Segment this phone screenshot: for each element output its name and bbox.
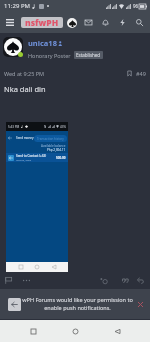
staticText: 11:29 PM	[4, 2, 30, 10]
staticText: Established	[76, 52, 101, 58]
button[interactable]: Attached screenshot	[6, 122, 68, 272]
button[interactable]: nsfwPH home	[21, 17, 63, 28]
staticText: Honorary Poster	[28, 52, 71, 59]
staticText: Transaction history	[37, 137, 64, 141]
staticText: Aug 20, 2023	[16, 158, 32, 161]
button[interactable]: Reply	[134, 274, 146, 286]
button[interactable]: Wed at 9:25 PM	[4, 70, 45, 77]
staticText: N	[44, 125, 47, 129]
button[interactable]: unica18	[28, 38, 57, 48]
staticText: Available balance	[41, 144, 66, 148]
button[interactable]: Dismiss	[135, 299, 145, 309]
button[interactable]: unica18 avatar	[3, 37, 23, 57]
button[interactable]: Add reaction	[97, 274, 110, 287]
staticText: Php 2,304.11	[47, 148, 66, 152]
button[interactable]: Back	[8, 298, 21, 311]
button[interactable]: Home	[66, 322, 84, 340]
staticText: Send to Contact (+63)	[16, 154, 47, 158]
button[interactable]: Inbox	[80, 12, 97, 33]
button[interactable]: Open navigation menu	[0, 12, 19, 33]
button[interactable]: Recents	[24, 322, 42, 340]
staticText: 500.00	[56, 156, 66, 160]
staticText: Nka dali din	[4, 84, 46, 94]
button[interactable]: Report	[3, 275, 14, 286]
button[interactable]: Search	[131, 12, 148, 33]
button[interactable]: Back	[108, 322, 126, 340]
button[interactable]: Alerts	[97, 12, 114, 33]
staticText: nsfwPH	[25, 17, 59, 28]
button[interactable]: Quote	[119, 274, 131, 286]
button[interactable]: What's new	[114, 12, 131, 33]
staticText: 96	[133, 3, 139, 9]
button[interactable]: Bookmark	[125, 69, 134, 78]
button[interactable]: #49	[136, 70, 146, 77]
button[interactable]: More options	[20, 274, 32, 286]
button[interactable]: Your account	[64, 15, 79, 30]
staticText: 43%	[60, 125, 66, 129]
staticText: 5:43 PM	[8, 125, 20, 129]
staticText: wPH Forums would like your permission to…	[22, 296, 133, 312]
staticText: Send money	[16, 136, 34, 140]
